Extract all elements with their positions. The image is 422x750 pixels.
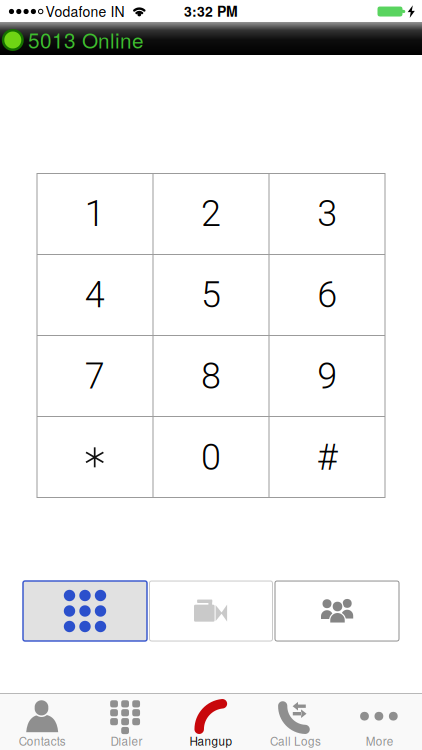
button[interactable]: 6 [269,254,385,335]
staticText: 5 [201,274,221,316]
staticText: Dialer [111,732,143,749]
staticText: 2 [201,192,221,235]
button[interactable]: 1 [37,173,153,254]
staticText: 7 [85,355,105,397]
button[interactable]: Hangup [169,693,253,750]
staticText: 9 [317,355,337,397]
button[interactable]: More [338,693,422,750]
staticText: 8 [201,355,221,397]
staticText: 5013 Online [28,25,144,54]
button[interactable] [37,417,153,498]
staticText: # [317,436,338,478]
button[interactable]: 8 [153,335,269,417]
button[interactable]: # [269,417,385,498]
button[interactable]: 4 [37,254,153,335]
button[interactable] [275,581,399,641]
staticText: Vodafone IN [45,1,124,21]
button[interactable]: 9 [269,335,385,417]
staticText: More [366,732,394,749]
button[interactable]: 7 [37,335,153,417]
button[interactable]: 2 [153,173,269,254]
staticText: 3 [317,192,337,235]
staticText: 4 [85,274,105,316]
staticText: 1 [85,192,105,235]
staticText: Hangup [189,732,232,749]
staticText: Call Logs [270,732,321,749]
button[interactable]: Contacts [0,693,84,750]
staticText: 3:32 PM [184,1,238,21]
button[interactable]: Call Logs [253,693,338,750]
button[interactable]: Dialer [84,693,169,750]
button[interactable] [23,581,147,641]
staticText: 0 [201,436,221,478]
button[interactable]: 5 [153,254,269,335]
button[interactable]: 0 [153,417,269,498]
staticText: Contacts [19,732,66,749]
staticText: 6 [317,274,337,316]
button[interactable] [149,581,272,641]
button[interactable]: 3 [269,173,385,254]
